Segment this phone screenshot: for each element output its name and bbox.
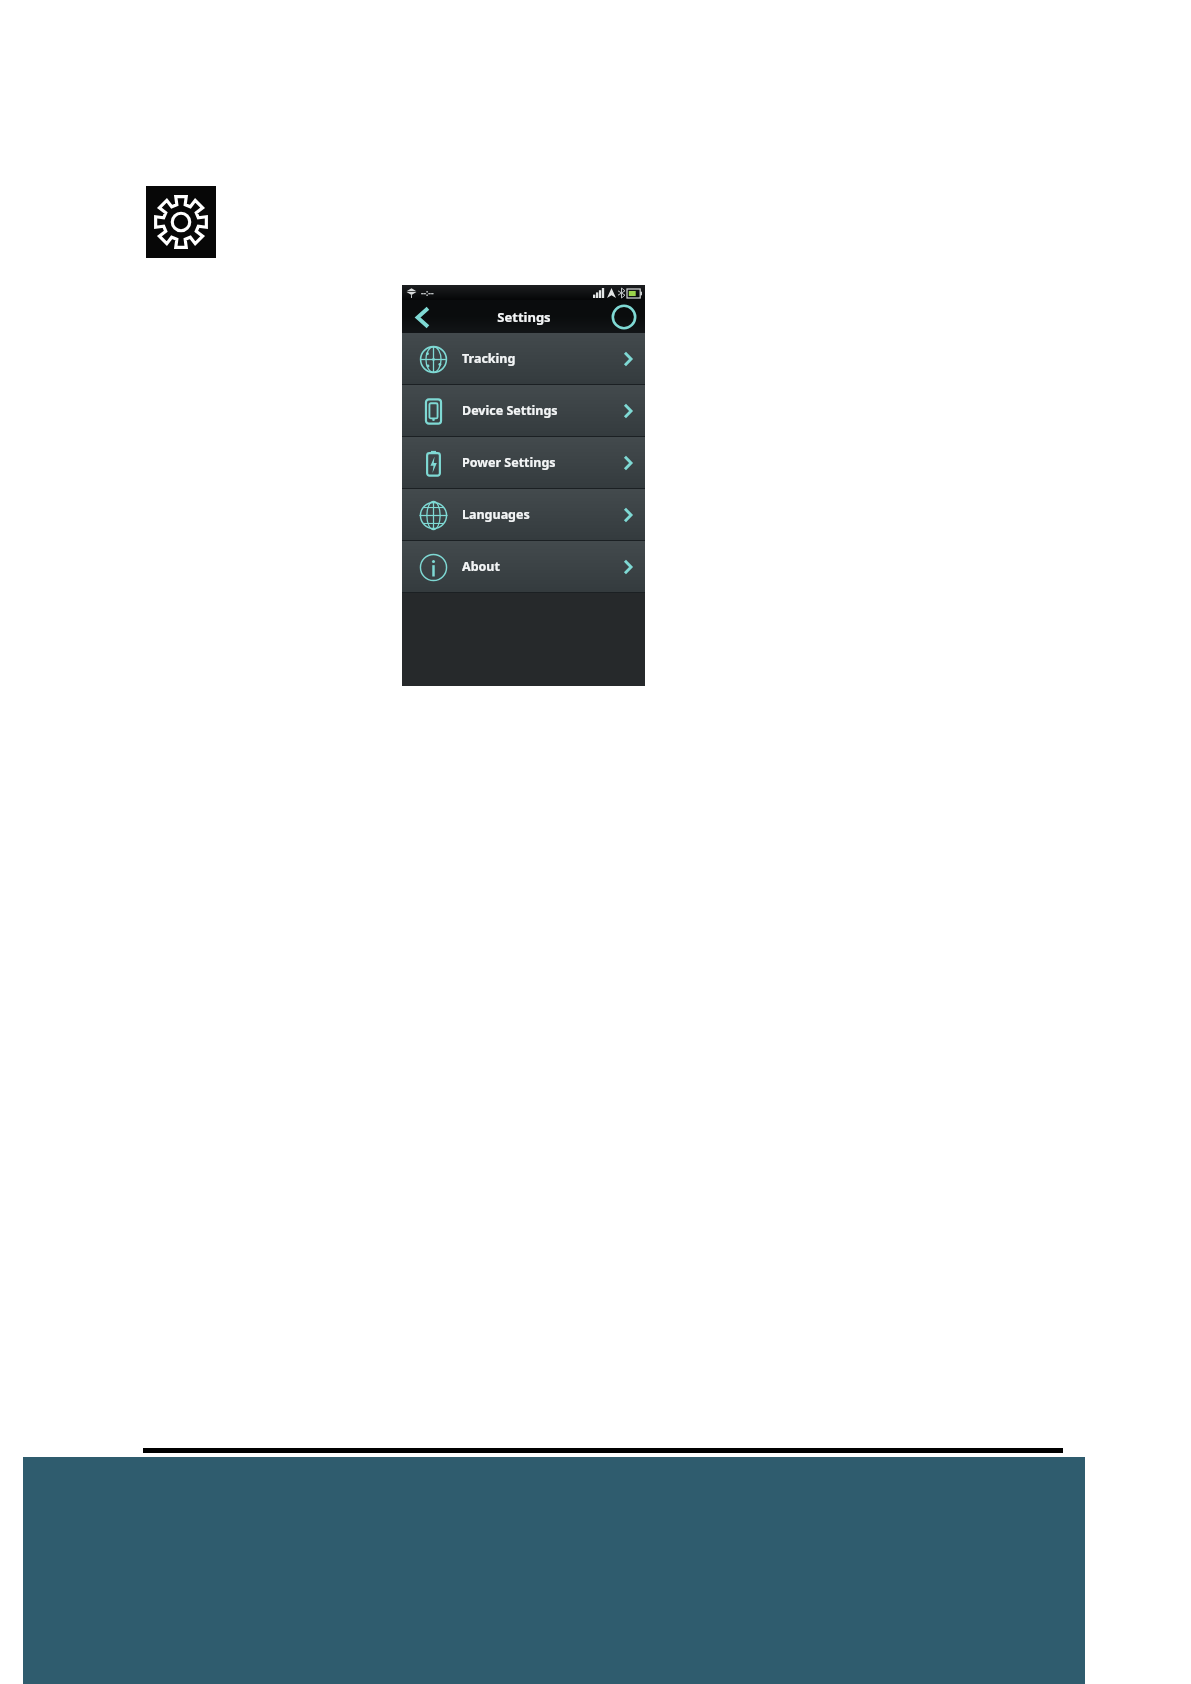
button[interactable]: About: [402, 541, 645, 592]
staticText: --:--: [421, 287, 434, 298]
button[interactable]: Power Settings: [402, 437, 645, 488]
button[interactable]: Tracking: [402, 333, 645, 384]
staticText: Power Settings: [462, 454, 556, 471]
button[interactable]: Device Settings: [402, 385, 645, 436]
staticText: Tracking: [462, 350, 516, 367]
button[interactable]: Back: [410, 303, 434, 331]
staticText: Settings: [497, 308, 551, 326]
staticText: Languages: [462, 506, 530, 523]
button[interactable]: Status: [609, 302, 639, 332]
staticText: About: [462, 558, 500, 575]
button[interactable]: Languages: [402, 489, 645, 540]
button[interactable]: Settings icon: [146, 186, 216, 258]
staticText: Device Settings: [462, 402, 558, 419]
